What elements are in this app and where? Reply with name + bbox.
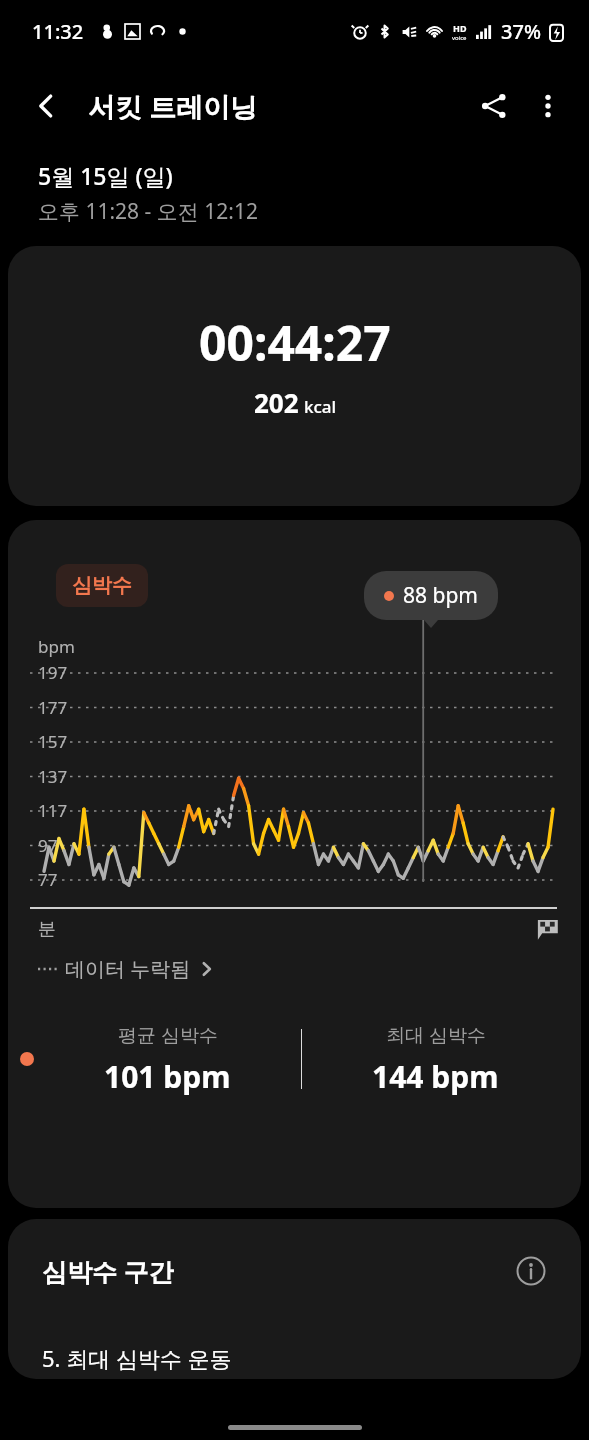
- staticText: bpm: [38, 635, 75, 658]
- staticText: 117: [38, 799, 68, 822]
- staticText: 심박수: [72, 573, 132, 598]
- staticText: HD: [453, 22, 467, 34]
- staticText: 분: [38, 918, 56, 941]
- staticText: 137: [38, 765, 68, 788]
- button[interactable]: Information: [509, 1249, 553, 1293]
- other: Finish: [535, 917, 559, 941]
- staticText: 심박수 구간: [42, 1254, 174, 1288]
- button[interactable]: Share: [467, 79, 521, 133]
- staticText: 144 bpm: [372, 1056, 499, 1097]
- button[interactable]: 심박수: [72, 573, 132, 598]
- staticText: 202: [254, 385, 299, 420]
- staticText: 157: [38, 730, 68, 753]
- staticText: kcal: [304, 395, 337, 418]
- staticText: 77: [38, 868, 58, 891]
- staticText: 88 bpm: [403, 581, 478, 610]
- staticText: 5. 최대 심박수 운동: [42, 1343, 232, 1373]
- staticText: 데이터 누락됨: [65, 955, 191, 982]
- staticText: 평균 심박수: [118, 1022, 218, 1048]
- staticText: 00:44:27: [199, 310, 391, 375]
- staticText: 101 bpm: [104, 1056, 231, 1097]
- staticText: 오후 11:28 - 오전 12:12: [38, 197, 258, 226]
- staticText: 37%: [501, 18, 541, 45]
- button[interactable]: 00:44:27: [8, 246, 581, 506]
- staticText: voice: [452, 34, 467, 42]
- staticText: 서킷 트레이닝: [88, 88, 258, 125]
- button[interactable]: Back: [22, 82, 70, 130]
- staticText: 97: [38, 834, 58, 857]
- staticText: 최대 심박수: [386, 1022, 486, 1048]
- button[interactable]: 데이터 누락됨: [38, 955, 581, 982]
- button[interactable]: 88 bpm: [384, 581, 478, 610]
- staticText: 177: [38, 696, 68, 719]
- staticText: 11:32: [32, 18, 84, 45]
- staticText: 197: [38, 661, 68, 684]
- button[interactable]: More options: [521, 79, 575, 133]
- staticText: 5월 15일 (일): [38, 160, 173, 191]
